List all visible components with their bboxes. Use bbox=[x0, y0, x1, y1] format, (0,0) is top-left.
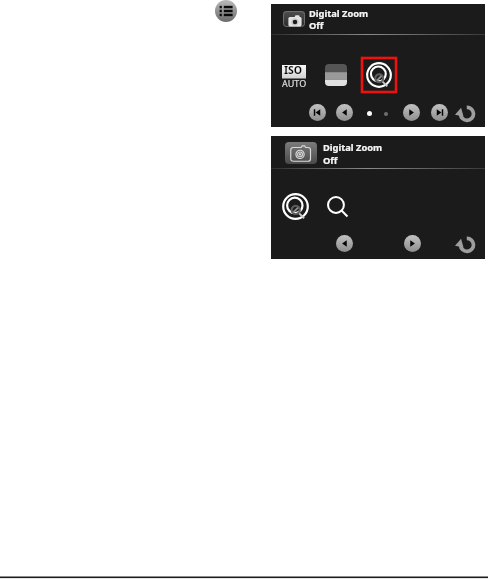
button[interactable]: Reset bbox=[455, 234, 475, 254]
staticText: Digital Zoom bbox=[309, 7, 369, 20]
button[interactable]: Digital Zoom Off bbox=[362, 58, 396, 92]
staticText: AUTO bbox=[282, 77, 307, 89]
button[interactable]: Digital Zoom bbox=[271, 4, 485, 34]
button[interactable]: Previous bbox=[336, 104, 353, 121]
button[interactable]: Play bbox=[403, 104, 420, 121]
button[interactable]: First bbox=[309, 104, 326, 121]
staticText: Off bbox=[309, 19, 324, 32]
button[interactable]: Digital Zoom Off bbox=[282, 193, 309, 220]
button[interactable]: Menu bbox=[215, 0, 237, 22]
button[interactable]: Reset bbox=[455, 103, 475, 123]
button[interactable]: Play bbox=[404, 235, 421, 252]
button[interactable]: Contrast bbox=[325, 64, 347, 86]
button[interactable]: Digital Zoom bbox=[271, 136, 485, 168]
button[interactable]: Previous bbox=[336, 235, 353, 252]
button[interactable]: Zoom bbox=[324, 193, 350, 219]
staticText: Digital Zoom bbox=[323, 141, 383, 154]
button[interactable]: Page 2 bbox=[384, 112, 388, 116]
button[interactable]: ISO Auto bbox=[282, 65, 316, 93]
button[interactable]: Last bbox=[431, 104, 448, 121]
staticText: ISO bbox=[284, 63, 303, 77]
button[interactable]: Page 1 bbox=[367, 111, 372, 116]
staticText: Off bbox=[323, 154, 338, 167]
